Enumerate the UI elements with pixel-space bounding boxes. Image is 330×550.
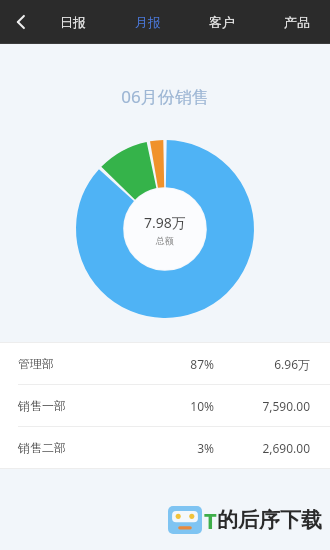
staticText: T: [204, 505, 217, 535]
staticText: 管理部: [18, 356, 158, 371]
staticText: 销售二部: [18, 440, 158, 455]
staticText: 87%: [158, 356, 214, 372]
staticText: 2,690.00: [236, 440, 310, 456]
staticText: 7,590.00: [236, 398, 310, 414]
staticText: 06月份销售: [121, 85, 209, 108]
staticText: 7.98万: [144, 213, 186, 232]
button[interactable]: 销售二部: [0, 427, 330, 468]
button[interactable]: 客户: [199, 6, 245, 38]
staticText: 客户: [209, 14, 235, 30]
button[interactable]: 产品: [274, 6, 320, 38]
staticText: 日报: [60, 14, 86, 30]
staticText: 6.96万: [236, 356, 310, 372]
button[interactable]: 月报: [125, 6, 171, 38]
button[interactable]: 管理部: [0, 343, 330, 384]
button[interactable]: 销售一部: [0, 385, 330, 426]
staticText: 10%: [158, 398, 214, 414]
staticText: 下载: [280, 507, 322, 533]
staticText: 总额: [156, 235, 174, 246]
staticText: 3%: [158, 440, 214, 456]
staticText: 产品: [284, 14, 310, 30]
button[interactable]: Back: [0, 0, 44, 44]
button[interactable]: 日报: [50, 6, 96, 38]
staticText: 的后序: [217, 507, 280, 533]
staticText: 月报: [135, 14, 161, 30]
staticText: 销售一部: [18, 398, 158, 413]
